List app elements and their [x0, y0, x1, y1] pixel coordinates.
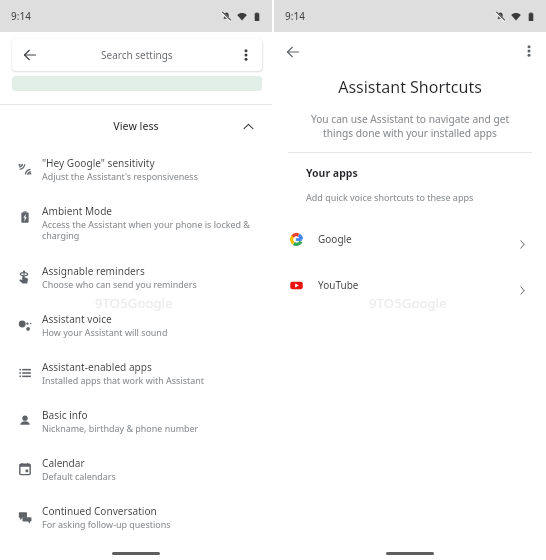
button[interactable]: Assistant-enabled apps [0, 348, 272, 396]
other: More options [523, 45, 535, 57]
staticText: 9TO5Google [369, 294, 447, 312]
button[interactable]: "Hey Google" sensitivity [0, 144, 272, 192]
staticText: Add quick voice shortcuts to these apps [306, 191, 474, 203]
button[interactable]: YouTube [274, 272, 546, 298]
staticText: Continued Conversation [42, 504, 157, 518]
staticText: Adjust the Assistant's responsiveness [42, 170, 198, 182]
staticText: 9:14 [285, 9, 305, 23]
button[interactable]: Back [12, 39, 262, 71]
staticText: Nickname, birthday & phone number [42, 422, 199, 434]
staticText: 9:14 [11, 9, 31, 23]
staticText: YouTube [318, 278, 359, 292]
button[interactable]: Google [274, 226, 546, 252]
staticText: Assistant Shortcuts [274, 76, 546, 98]
staticText: View less [0, 119, 272, 133]
staticText: "Hey Google" sensitivity [42, 156, 155, 170]
staticText: 9TO5Google [95, 294, 173, 312]
other: More options [240, 49, 252, 61]
staticText: Access the Assistant when your phone is … [42, 218, 256, 242]
button[interactable]: Assistant voice [0, 300, 272, 348]
staticText: How your Assistant will sound [42, 326, 168, 338]
staticText: Your apps [306, 166, 358, 180]
staticText: Default calendars [42, 470, 116, 482]
staticText: Assistant-enabled apps [42, 360, 152, 374]
staticText: Installed apps that work with Assistant [42, 374, 204, 386]
staticText: Ambient Mode [42, 204, 113, 218]
staticText: Assignable reminders [42, 264, 145, 278]
other: Back [23, 48, 37, 62]
staticText: Google [318, 232, 352, 246]
button[interactable]: Assignable reminders [0, 252, 272, 300]
button[interactable]: View less [0, 105, 272, 144]
button[interactable]: Ambient Mode [0, 192, 272, 252]
staticText: Basic info [42, 408, 88, 422]
staticText: Choose who can send you reminders [42, 278, 197, 290]
other: Back [286, 45, 300, 59]
staticText: Assistant voice [42, 312, 112, 326]
button[interactable]: Basic info [0, 396, 272, 444]
staticText: You can use Assistant to navigate and ge… [304, 112, 516, 140]
other: Open Google [517, 239, 528, 250]
other: Open YouTube [517, 285, 528, 296]
button[interactable]: Continued Conversation [0, 492, 272, 540]
staticText: Calendar [42, 456, 85, 470]
staticText: For asking follow-up questions [42, 518, 171, 530]
button[interactable]: Calendar [0, 444, 272, 492]
staticText: Search settings [101, 48, 173, 62]
